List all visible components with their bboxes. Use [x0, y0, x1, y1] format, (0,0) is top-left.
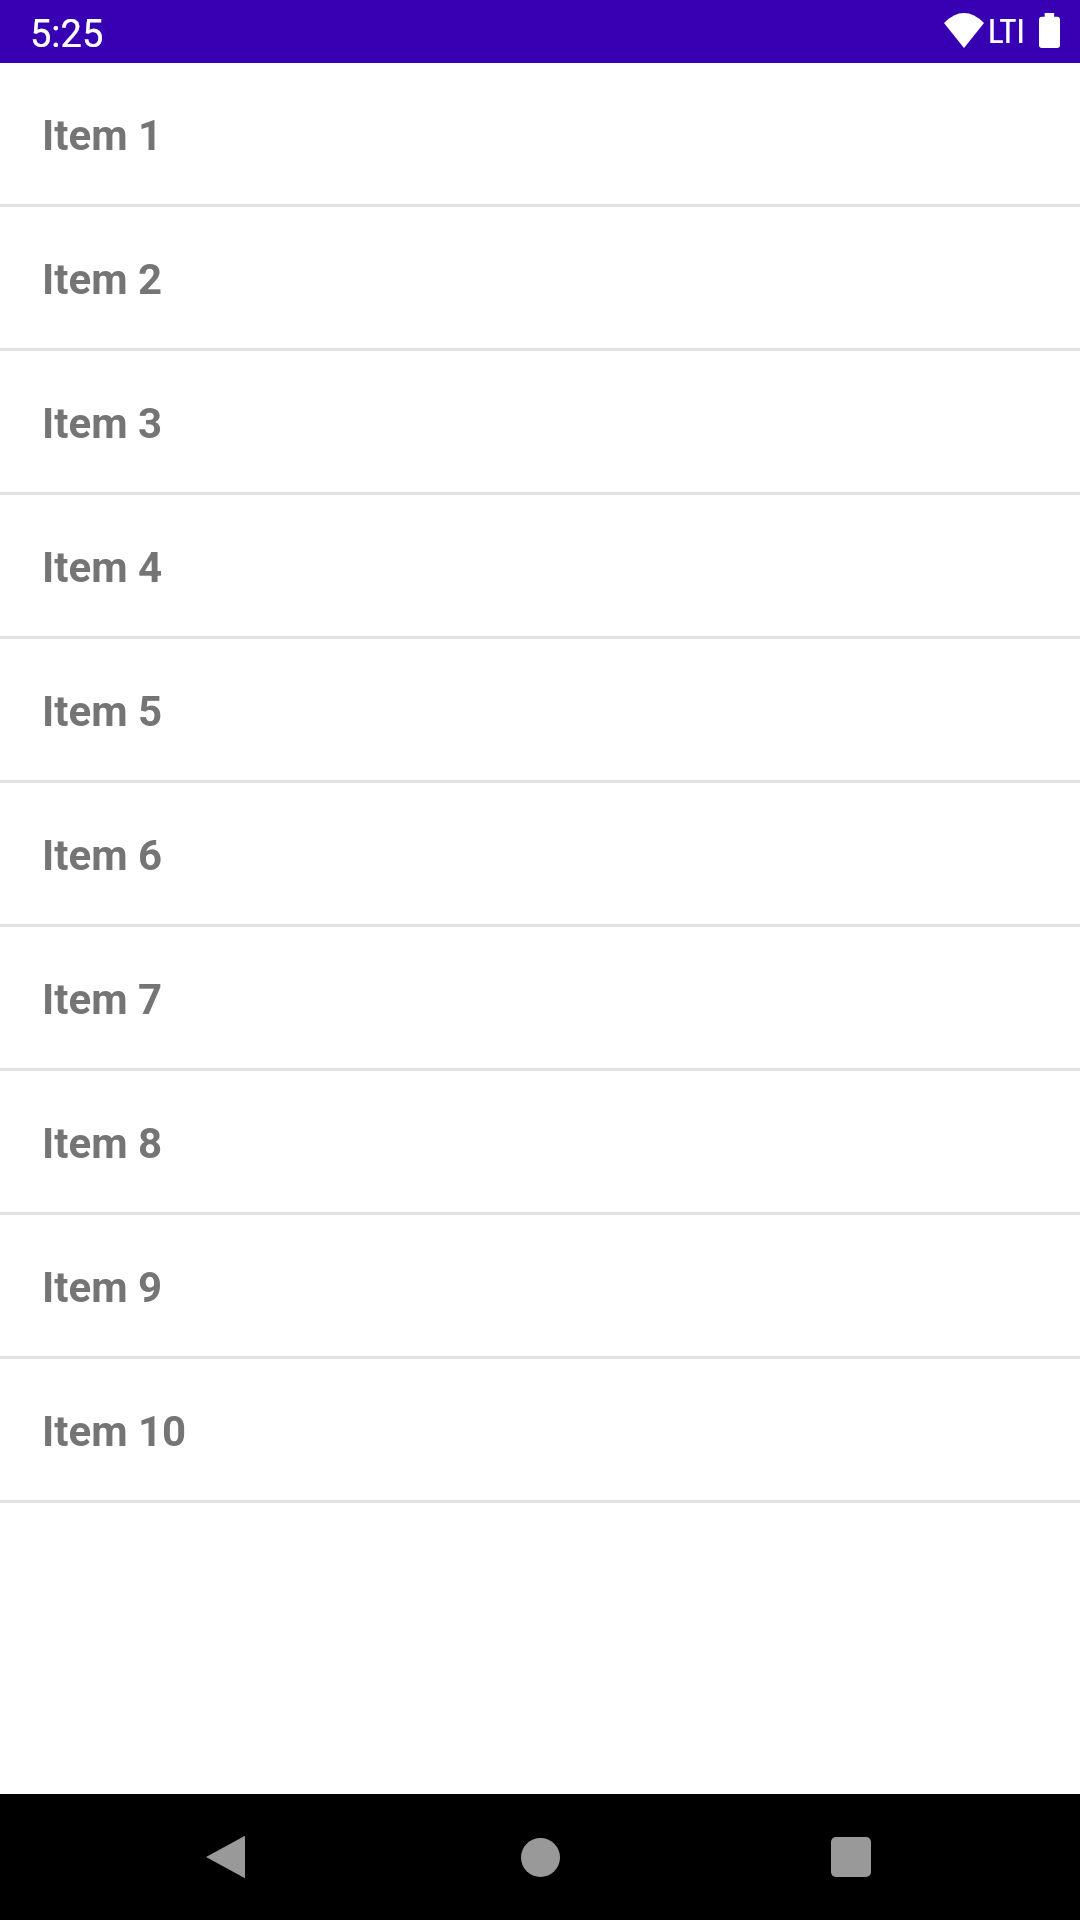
- button[interactable]: Item 9: [0, 1215, 1080, 1356]
- staticText: Item 6: [42, 831, 163, 880]
- staticText: Item 3: [42, 399, 163, 448]
- staticText: 5:25: [30, 12, 104, 57]
- button[interactable]: Item 4: [0, 495, 1080, 636]
- button[interactable]: Item 7: [0, 927, 1080, 1068]
- button[interactable]: Recent apps: [781, 1794, 921, 1920]
- button[interactable]: Item 3: [0, 351, 1080, 492]
- staticText: Item 7: [42, 975, 163, 1024]
- staticText: Item 5: [42, 687, 163, 736]
- staticText: LTI: [988, 12, 1025, 51]
- button[interactable]: Item 1: [0, 63, 1080, 204]
- button[interactable]: Home: [470, 1794, 610, 1920]
- staticText: Item 10: [42, 1407, 187, 1456]
- button[interactable]: Item 2: [0, 207, 1080, 348]
- staticText: Item 9: [42, 1263, 163, 1312]
- staticText: Item 2: [42, 255, 163, 304]
- button[interactable]: Item 10: [0, 1359, 1080, 1500]
- button[interactable]: Item 5: [0, 639, 1080, 780]
- staticText: Item 1: [42, 111, 163, 160]
- button[interactable]: Item 6: [0, 783, 1080, 924]
- button[interactable]: Back: [156, 1794, 296, 1920]
- staticText: Item 8: [42, 1119, 163, 1168]
- button[interactable]: Item 8: [0, 1071, 1080, 1212]
- staticText: Item 4: [42, 543, 163, 592]
